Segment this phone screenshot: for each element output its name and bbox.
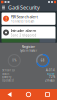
button[interactable]: Back: [0, 89, 19, 100]
staticText: Sensor ID: [2, 68, 15, 72]
staticText: Intruder alarm: [10, 28, 36, 33]
button[interactable]: Intruder alarm: [1, 26, 55, 43]
button[interactable]: Home: [19, 89, 38, 100]
button[interactable]: !: [1, 12, 55, 25]
staticText: Gadi Security: [8, 4, 40, 11]
button[interactable]: Recent apps: [38, 89, 57, 100]
staticText: 68: [41, 59, 45, 62]
staticText: Status: [2, 72, 9, 75]
staticText: Perimeter breach: [10, 20, 34, 23]
staticText: System Tracker: [20, 49, 37, 52]
button[interactable]: Menu: [1, 4, 6, 11]
staticText: 0%: [12, 59, 16, 62]
staticText: Register: [21, 44, 35, 49]
staticText: 2m ago: [45, 79, 55, 82]
staticText: PIR Search alert: [10, 14, 37, 19]
staticText: 72%: [49, 75, 55, 79]
staticText: Active: [47, 72, 55, 75]
staticText: Battery: [2, 75, 11, 79]
staticText: Updated: [2, 79, 14, 82]
staticText: Zone 2 triggered: [10, 34, 36, 37]
staticText: A-014: [46, 68, 55, 72]
